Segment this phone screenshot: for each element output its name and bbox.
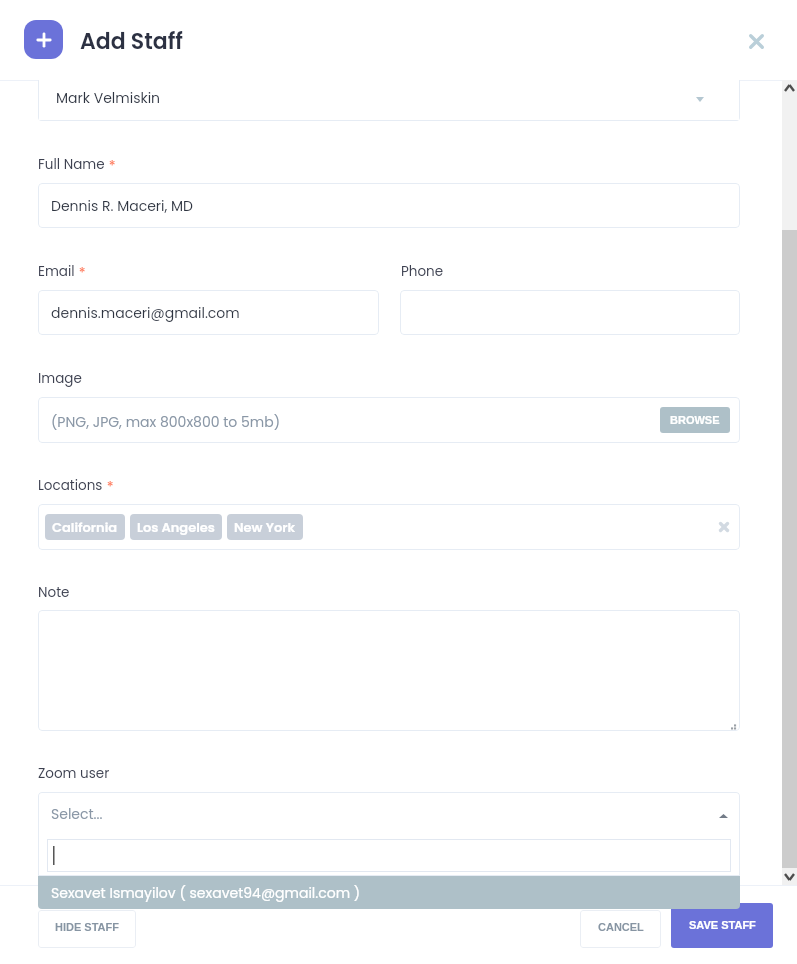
staticText: HIDE STAFF xyxy=(55,921,119,933)
staticText: Mark Velmiskin xyxy=(56,88,161,108)
staticText: Note xyxy=(38,583,70,602)
button[interactable]: Select... xyxy=(38,792,740,876)
button[interactable]: BROWSE xyxy=(660,407,730,433)
staticText: Sexavet Ismayilov ( sexavet94@gmail.com … xyxy=(51,883,361,903)
button[interactable]: CANCEL xyxy=(580,910,661,948)
button[interactable]: (PNG, JPG, max 800x800 to 5mb) xyxy=(38,397,740,443)
button[interactable]: HIDE STAFF xyxy=(38,910,136,948)
staticText: * xyxy=(75,263,86,283)
staticText: BROWSE xyxy=(670,414,720,426)
button[interactable]: New York xyxy=(227,514,303,540)
staticText: Image xyxy=(38,369,82,388)
staticText: Locations xyxy=(38,476,103,495)
button[interactable] xyxy=(38,610,740,731)
staticText: * xyxy=(105,156,116,176)
button[interactable]: Add xyxy=(24,20,63,59)
staticText: SAVE STAFF xyxy=(689,919,756,931)
staticText: Select... xyxy=(51,804,103,824)
staticText: (PNG, JPG, max 800x800 to 5mb) xyxy=(51,412,281,432)
button[interactable]: Close xyxy=(742,26,770,54)
button[interactable]: Los Angeles xyxy=(130,514,222,540)
staticText: Full Name xyxy=(38,155,105,174)
button[interactable]: Clear locations xyxy=(715,518,732,535)
button[interactable]: California xyxy=(45,514,125,540)
button[interactable]: Dennis R. Maceri, MD xyxy=(38,183,740,228)
button[interactable]: SAVE STAFF xyxy=(671,903,773,948)
staticText: dennis.maceri@gmail.com xyxy=(51,303,240,323)
button[interactable]: California xyxy=(38,504,740,550)
button[interactable]: dennis.maceri@gmail.com xyxy=(38,290,379,335)
button[interactable]: Mark Velmiskin xyxy=(38,80,740,121)
staticText: New York xyxy=(234,518,296,536)
button[interactable] xyxy=(400,290,740,335)
staticText: Zoom user xyxy=(38,764,110,783)
staticText: CANCEL xyxy=(598,921,644,933)
button[interactable] xyxy=(47,839,731,872)
staticText: Los Angeles xyxy=(137,518,215,536)
staticText: Email xyxy=(38,262,75,281)
button[interactable]: Sexavet Ismayilov ( sexavet94@gmail.com … xyxy=(38,876,740,909)
staticText: Phone xyxy=(401,262,444,281)
staticText: California xyxy=(52,518,118,536)
staticText: Add Staff xyxy=(80,26,183,57)
staticText: Dennis R. Maceri, MD xyxy=(51,196,194,216)
staticText: * xyxy=(103,477,114,497)
